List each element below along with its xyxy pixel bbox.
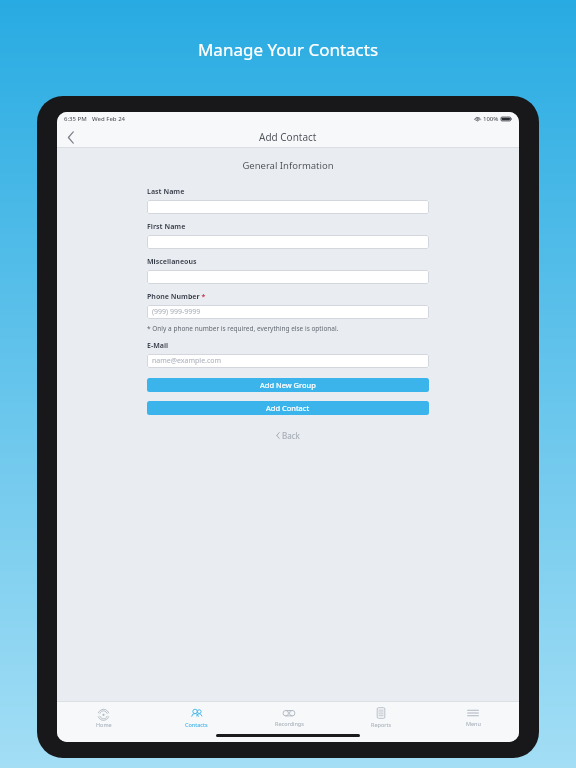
staticText: Contacts (185, 721, 208, 728)
button[interactable] (147, 270, 429, 284)
button[interactable]: (999) 999-9999 (147, 305, 429, 319)
button[interactable] (147, 235, 429, 249)
staticText: First Name (147, 222, 186, 232)
button[interactable]: Recordings (243, 702, 335, 733)
staticText: Recordings (275, 720, 304, 727)
button[interactable]: name@example.com (147, 354, 429, 368)
staticText: Back (282, 430, 300, 441)
staticText: 6:35 PM (64, 115, 87, 123)
button[interactable]: Reports (335, 702, 427, 733)
staticText: * Only a phone number is required, every… (147, 324, 339, 333)
staticText: Add Contact (266, 403, 310, 413)
button[interactable]: Home (57, 702, 150, 733)
staticText: Add New Group (260, 380, 316, 390)
staticText: Last Name (147, 187, 185, 197)
staticText: Menu (466, 720, 481, 727)
staticText: Manage Your Contacts (0, 38, 576, 61)
staticText: E-Mail (147, 341, 169, 351)
staticText: General Information (57, 159, 519, 172)
staticText: Add Contact (259, 130, 317, 144)
button[interactable]: Back (61, 127, 81, 147)
button[interactable]: Menu (427, 702, 519, 733)
staticText: Home (96, 721, 112, 728)
button[interactable]: Add Contact (147, 401, 429, 415)
staticText: Miscellaneous (147, 257, 197, 267)
button[interactable]: Back (147, 430, 429, 441)
button[interactable] (147, 200, 429, 214)
button[interactable]: Contacts (150, 702, 243, 733)
staticText: 100% (483, 115, 499, 123)
staticText: Wed Feb 24 (92, 115, 126, 123)
staticText: name@example.com (152, 356, 222, 366)
staticText: (999) 999-9999 (152, 307, 201, 317)
button[interactable]: Add New Group (147, 378, 429, 392)
staticText: Reports (371, 721, 392, 728)
staticText: Phone Number * (147, 292, 206, 302)
